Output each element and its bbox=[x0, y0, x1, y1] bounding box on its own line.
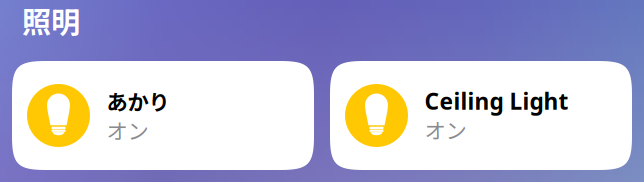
staticText: オン bbox=[106, 114, 148, 145]
button[interactable]: あかり bbox=[12, 61, 314, 170]
staticText: Ceiling Light bbox=[424, 86, 568, 116]
button[interactable]: Ceiling Light bbox=[330, 61, 632, 170]
staticText: オン bbox=[424, 114, 466, 145]
staticText: 照明 bbox=[22, 0, 80, 41]
staticText: あかり bbox=[106, 86, 169, 116]
